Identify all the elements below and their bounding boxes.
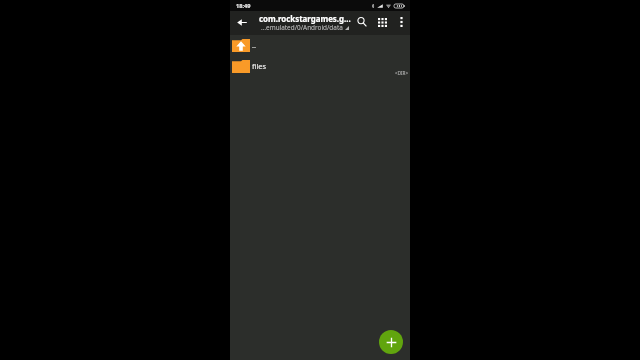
staticText: <DIR>	[395, 70, 409, 76]
button[interactable]: ..	[230, 35, 410, 56]
staticText: ..	[252, 40, 407, 50]
button[interactable]: files	[230, 56, 410, 77]
button[interactable]: View mode	[372, 12, 392, 32]
staticText: …emulated/0/Android/data	[261, 23, 343, 32]
button[interactable]: More options	[392, 13, 410, 31]
staticText: 18:49	[236, 2, 251, 10]
staticText: files	[252, 61, 407, 71]
button[interactable]: Add	[379, 330, 403, 354]
staticText: com.rockstargames.g…	[259, 14, 351, 25]
button[interactable]: Back	[230, 10, 254, 34]
button[interactable]: Search	[352, 12, 372, 32]
